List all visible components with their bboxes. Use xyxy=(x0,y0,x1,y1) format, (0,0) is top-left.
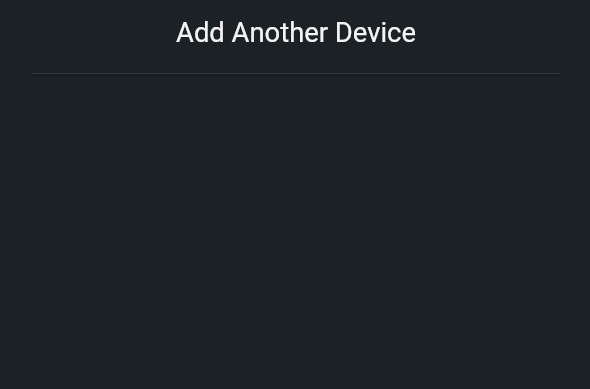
staticText: Add Another Device xyxy=(176,17,416,49)
